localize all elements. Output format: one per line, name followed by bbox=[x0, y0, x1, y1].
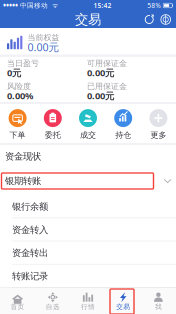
staticText: 中国移动 bbox=[18, 1, 48, 10]
button[interactable]: Refresh bbox=[141, 11, 157, 28]
staticText: 转账记录 bbox=[12, 270, 48, 282]
staticText: 行情 bbox=[81, 303, 95, 311]
button[interactable]: 交易 bbox=[106, 288, 141, 314]
button[interactable]: 持仓 bbox=[106, 109, 141, 140]
button[interactable]: 下单 bbox=[0, 109, 35, 140]
staticText: 更多 bbox=[150, 130, 166, 140]
button[interactable]: 更多 bbox=[141, 109, 176, 140]
staticText: 我 bbox=[155, 303, 162, 311]
staticText: 可用保证金 bbox=[87, 58, 127, 68]
staticText: 当日盈亏 bbox=[7, 58, 39, 68]
button[interactable]: 转账记录 bbox=[0, 265, 176, 288]
staticText: 交易 bbox=[75, 11, 101, 28]
staticText: 银行余额 bbox=[12, 201, 48, 212]
button[interactable]: Account bbox=[157, 15, 174, 24]
button[interactable]: 自选 bbox=[35, 288, 70, 314]
staticText: 下单 bbox=[10, 130, 26, 140]
staticText: 已用保证金 bbox=[87, 81, 127, 91]
staticText: 0.00元 bbox=[87, 90, 114, 102]
staticText: 自选 bbox=[46, 303, 60, 311]
staticText: ••••• bbox=[3, 0, 18, 11]
button[interactable]: 首页 bbox=[0, 288, 35, 314]
button[interactable]: 银行余额 bbox=[0, 195, 176, 218]
staticText: 资金转出 bbox=[12, 247, 48, 259]
button[interactable]: 资金转出 bbox=[0, 241, 176, 265]
staticText: 0.00元 bbox=[27, 40, 59, 54]
button[interactable]: 行情 bbox=[70, 288, 106, 314]
staticText: 0元 bbox=[7, 67, 21, 79]
staticText: 交易 bbox=[116, 303, 130, 311]
staticText: 15:42 bbox=[94, 1, 112, 10]
button[interactable]: 委托 bbox=[35, 109, 70, 140]
staticText: 首页 bbox=[11, 303, 25, 311]
staticText: 0.00% bbox=[7, 90, 33, 102]
staticText: 58% bbox=[147, 1, 163, 10]
staticText: 持仓 bbox=[115, 130, 131, 140]
button[interactable]: 成交 bbox=[70, 109, 106, 140]
button[interactable]: 我 bbox=[141, 288, 176, 314]
staticText: 0.00元 bbox=[87, 67, 114, 79]
staticText: ᯤ bbox=[48, 1, 58, 10]
staticText: 成交 bbox=[80, 130, 96, 140]
button[interactable]: 银期转账 bbox=[0, 170, 176, 192]
staticText: 资金转入 bbox=[12, 224, 48, 236]
staticText: 银期转账 bbox=[5, 175, 41, 187]
staticText: 当前权益 bbox=[27, 33, 59, 42]
staticText: 委托 bbox=[45, 130, 61, 140]
staticText: 资金现状 bbox=[5, 151, 41, 162]
button[interactable]: 资金转入 bbox=[0, 218, 176, 241]
staticText: 风险度 bbox=[7, 81, 31, 91]
